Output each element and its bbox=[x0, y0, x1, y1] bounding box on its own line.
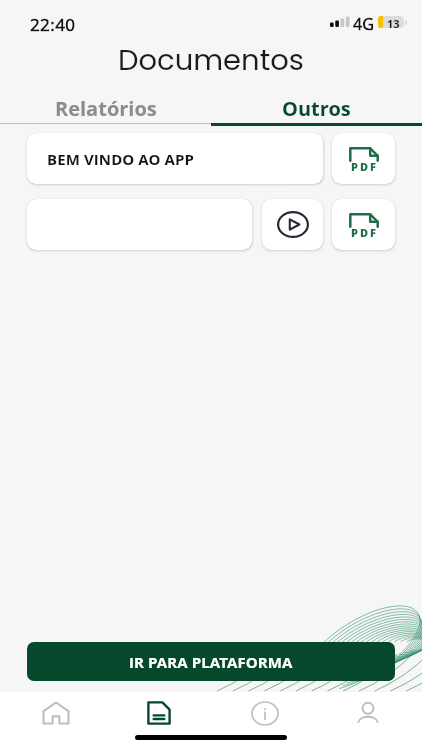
staticText: 22:40 bbox=[30, 13, 76, 36]
staticText: BEM VINDO AO APP bbox=[47, 149, 195, 169]
button[interactable]: Início bbox=[9, 694, 102, 732]
staticText: 13 bbox=[387, 16, 400, 31]
button[interactable]: IR PARA PLATAFORMA bbox=[27, 642, 395, 681]
button[interactable]: Informações bbox=[218, 694, 311, 732]
staticText: PDF bbox=[351, 159, 378, 174]
staticText: IR PARA PLATAFORMA bbox=[129, 652, 293, 672]
staticText: Documentos bbox=[118, 40, 304, 78]
staticText: Relatórios bbox=[55, 95, 157, 122]
button[interactable]: Relatórios bbox=[0, 93, 211, 123]
button[interactable]: Documentos bbox=[112, 694, 205, 732]
button[interactable]: PDF bbox=[332, 199, 395, 250]
button[interactable]: Perfil bbox=[321, 694, 414, 732]
button[interactable]: Outros bbox=[211, 93, 422, 123]
button[interactable]: Reproduzir bbox=[262, 199, 323, 250]
button[interactable]: PDF bbox=[332, 133, 395, 184]
button[interactable]: BEM VINDO AO APP bbox=[27, 133, 323, 184]
staticText: Outros bbox=[282, 95, 351, 122]
staticText: 4G bbox=[353, 13, 374, 35]
staticText: PDF bbox=[351, 225, 378, 240]
